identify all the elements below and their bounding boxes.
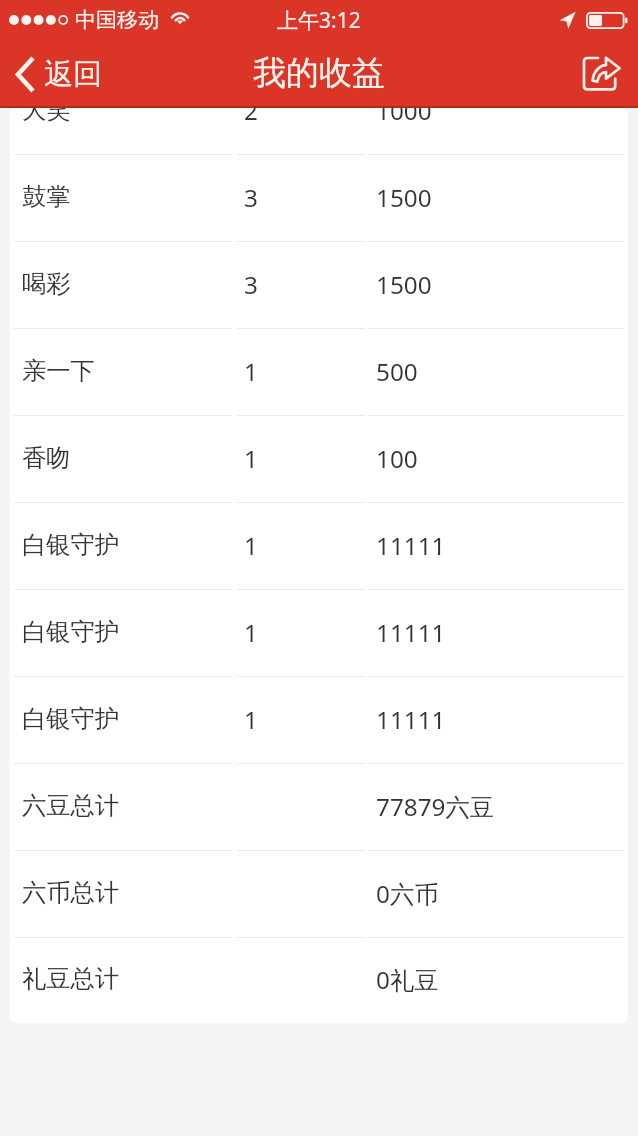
button[interactable]: Share <box>582 40 638 108</box>
staticText: 11111 <box>376 529 446 562</box>
button[interactable]: 返回 <box>0 40 118 108</box>
staticText: 白银守护 <box>22 530 120 561</box>
staticText: 礼豆总计 <box>22 964 120 995</box>
staticText: 1 <box>244 442 258 475</box>
staticText: 白银守护 <box>22 617 120 648</box>
staticText: 1500 <box>376 268 432 301</box>
staticText: 1 <box>244 355 258 388</box>
button[interactable]: 六豆总计 <box>10 764 628 851</box>
button[interactable]: 礼豆总计 <box>10 938 628 1023</box>
staticText: 鼓掌 <box>22 182 71 213</box>
staticText: 11111 <box>376 616 446 649</box>
button[interactable]: 鼓掌 <box>10 155 628 242</box>
staticText: 1 <box>244 703 258 736</box>
button[interactable]: 白银守护 <box>10 590 628 677</box>
button[interactable]: 大笑 <box>10 68 628 155</box>
staticText: 0礼豆 <box>376 963 439 996</box>
staticText: 白银守护 <box>22 704 120 735</box>
staticText: 1500 <box>376 181 432 214</box>
staticText: 100 <box>376 442 418 475</box>
staticText: 我的收益 <box>253 52 385 94</box>
button[interactable]: 白银守护 <box>10 677 628 764</box>
staticText: 1000 <box>376 94 432 127</box>
staticText: 1 <box>244 529 258 562</box>
staticText: 11111 <box>376 703 446 736</box>
button[interactable]: 亲一下 <box>10 329 628 416</box>
staticText: 77879六豆 <box>376 790 495 823</box>
staticText: 返回 <box>44 56 102 93</box>
staticText: 上午3:12 <box>277 6 361 35</box>
staticText: 亲一下 <box>22 356 95 387</box>
staticText: 大笑 <box>22 95 71 126</box>
button[interactable]: 喝彩 <box>10 242 628 329</box>
staticText: 香吻 <box>22 443 71 474</box>
button[interactable]: 六币总计 <box>10 851 628 938</box>
staticText: 500 <box>376 355 418 388</box>
staticText: 0六币 <box>376 877 439 910</box>
staticText: 六币总计 <box>22 878 120 909</box>
staticText: 中国移动 <box>75 7 159 33</box>
staticText: 喝彩 <box>22 269 71 300</box>
button[interactable]: 香吻 <box>10 416 628 503</box>
staticText: 3 <box>244 268 258 301</box>
staticText: 2 <box>244 94 258 127</box>
staticText: 1 <box>244 616 258 649</box>
staticText: 六豆总计 <box>22 791 120 822</box>
staticText: 3 <box>244 181 258 214</box>
button[interactable]: 白银守护 <box>10 503 628 590</box>
